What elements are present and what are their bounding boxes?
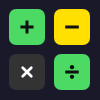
- button[interactable]: Add: [9, 9, 45, 45]
- button[interactable]: Divide: [54, 54, 90, 90]
- button[interactable]: Subtract: [54, 9, 90, 45]
- button[interactable]: Multiply: [9, 54, 45, 90]
